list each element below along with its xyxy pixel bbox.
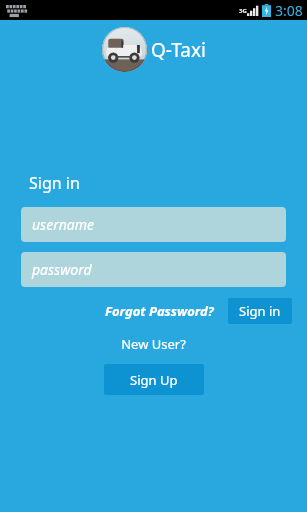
staticText: Q-Taxi: [151, 37, 206, 63]
staticText: Sign in: [29, 172, 80, 194]
staticText: New User?: [121, 335, 186, 353]
button[interactable]: Sign Up: [104, 364, 204, 395]
button[interactable]: Forgot Password?: [101, 298, 218, 324]
staticText: password: [32, 260, 92, 279]
button[interactable]: New User?: [115, 332, 192, 356]
staticText: 3G: [239, 7, 247, 15]
staticText: Forgot Password?: [105, 302, 214, 320]
button[interactable]: password: [21, 252, 286, 287]
button[interactable]: username: [21, 207, 286, 242]
staticText: Sign in: [239, 302, 281, 320]
staticText: username: [32, 215, 95, 234]
other: Q-Taxi logo: [102, 27, 147, 72]
staticText: 3:08: [275, 1, 303, 20]
button[interactable]: Sign in: [228, 298, 292, 324]
staticText: Sign Up: [130, 371, 178, 389]
